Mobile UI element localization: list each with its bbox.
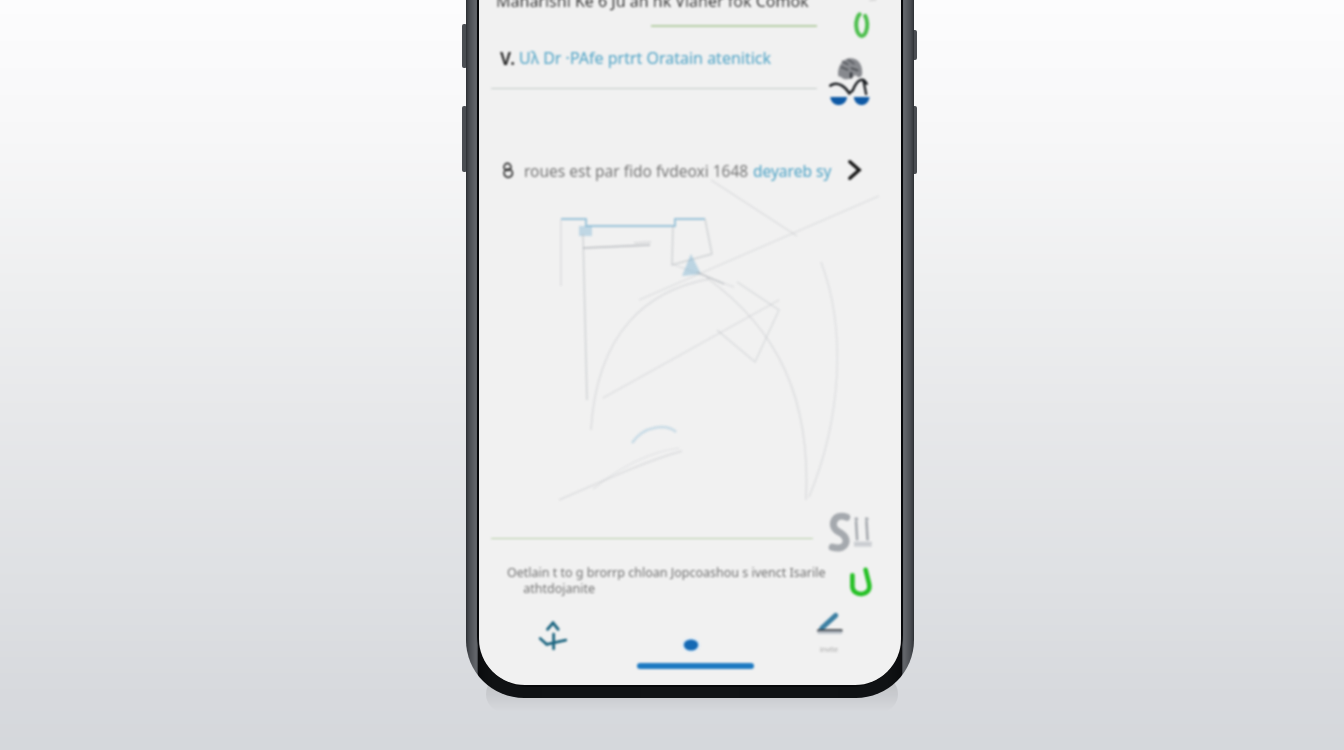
staticText: sr: [869, 0, 878, 4]
button[interactable]: Home: [671, 625, 711, 665]
button[interactable]: Edit: [807, 612, 851, 656]
staticText: Maharishi Ke 6 Ju ah hk Vianer fok Comok: [496, 0, 809, 12]
staticText: invite: [820, 645, 838, 655]
button[interactable]: roues est par fido fvdeoxi 1648: [479, 152, 901, 188]
staticText: deyareb sy: [753, 160, 832, 181]
staticText: V.: [500, 47, 515, 70]
staticText: Oetlain t to g brorrp chloan Jopcoashou …: [507, 564, 859, 596]
button[interactable]: Directions: [529, 612, 577, 660]
button[interactable]: V.: [479, 45, 901, 71]
button[interactable]: Refresh: [843, 6, 879, 44]
staticText: roues est par fido fvdeoxi 1648: [524, 160, 753, 181]
staticText: Uλ Dr ·PAfe prtrt Oratain atenitick: [519, 47, 772, 69]
button[interactable]: Profile: [823, 52, 879, 112]
